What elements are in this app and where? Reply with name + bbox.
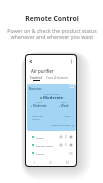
- staticText: Power on & check the product status when…: [7, 27, 97, 41]
- staticText: Booster Speed: [36, 144, 54, 147]
- staticText: PM10: [61, 101, 67, 104]
- button[interactable]: Recents: [59, 158, 76, 166]
- button[interactable]: Decrease Speed: [59, 135, 63, 139]
- staticText: Moderate: [33, 104, 47, 108]
- button[interactable]: More options: [69, 59, 74, 64]
- staticText: Booster: [29, 86, 42, 91]
- button[interactable]: Care & feature: [46, 75, 69, 79]
- button[interactable]: Increase Booster Speed: [69, 143, 73, 147]
- button[interactable]: Reset: [65, 115, 71, 118]
- button[interactable]: Speed: [32, 133, 73, 141]
- button[interactable]: Saving: [32, 149, 73, 157]
- button[interactable]: Power: [70, 84, 74, 88]
- staticText: Moderate: [43, 95, 64, 101]
- staticText: Air purifier: [31, 68, 54, 74]
- staticText: Normal: [32, 118, 40, 121]
- button[interactable]: Increase Speed: [69, 135, 73, 139]
- staticText: Indoor air quality: [27, 93, 76, 96]
- button[interactable]: Back: [26, 158, 42, 166]
- staticText: Filter check: [32, 115, 44, 118]
- staticText: Weak: [61, 104, 69, 108]
- staticText: 2: [65, 135, 67, 139]
- button[interactable]: Control: [30, 75, 42, 81]
- staticText: Speed: [36, 136, 44, 139]
- button[interactable]: Decrease Booster Speed: [59, 143, 63, 147]
- staticText: PM2.5: [36, 101, 43, 104]
- button[interactable]: Booster Speed: [32, 141, 73, 149]
- staticText: Advanced air quality: [51, 124, 71, 127]
- button[interactable]: Toggle Saving: [68, 152, 73, 155]
- staticText: Remote Control: [25, 14, 79, 23]
- button[interactable]: Back: [28, 59, 33, 64]
- button[interactable]: Home: [42, 158, 59, 166]
- staticText: Control: [30, 75, 42, 79]
- staticText: 3: [65, 143, 67, 147]
- button[interactable]: Booster: [27, 84, 76, 131]
- staticText: Saving: [36, 152, 44, 155]
